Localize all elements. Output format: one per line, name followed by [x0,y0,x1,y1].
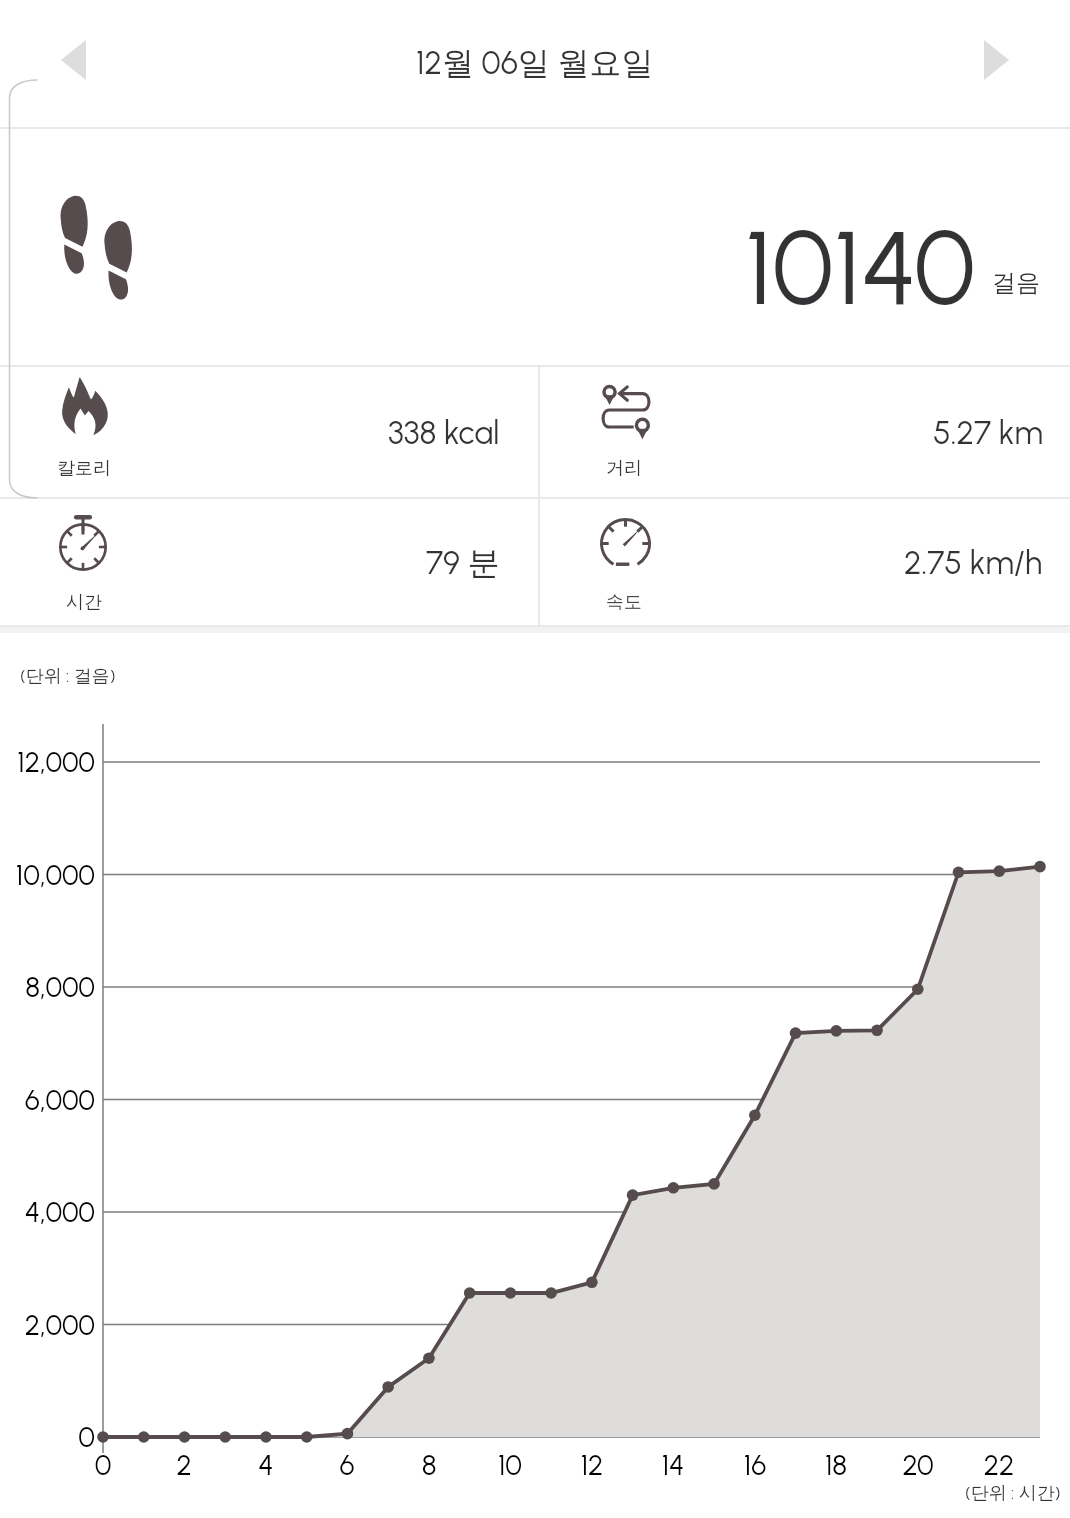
staticText: 8,000 [3,970,95,1004]
button[interactable]: 거리 [540,367,1070,497]
button[interactable]: Previous day [40,26,107,94]
button[interactable]: 속도 [540,499,1070,625]
staticText: 2.75 km/h [904,544,1043,582]
staticText: 칼로리 [24,457,144,480]
staticText: 12,000 [3,745,95,779]
button[interactable]: 시간 [0,499,538,625]
staticText: 6,000 [3,1083,95,1117]
staticText: 10 [480,1448,540,1482]
staticText: 6 [317,1448,377,1482]
staticText: 8 [399,1448,459,1482]
staticText: 0 [3,1420,95,1454]
staticText: 10,000 [3,858,95,892]
staticText: 10140 [745,206,976,330]
staticText: 2 [154,1448,214,1482]
staticText: 12 [562,1448,622,1482]
staticText: 16 [725,1448,785,1482]
staticText: 4,000 [3,1195,95,1229]
button[interactable]: 10140 [0,129,1070,365]
staticText: 5.27 km [933,414,1043,452]
staticText: 2,000 [3,1308,95,1342]
button[interactable]: 칼로리 [0,367,538,497]
button[interactable]: Next day [963,26,1030,94]
staticText: 시간 [24,591,144,614]
staticText: 걸음 [992,268,1040,298]
staticText: 4 [236,1448,296,1482]
staticText: 18 [806,1448,866,1482]
staticText: 79 분 [426,543,500,583]
staticText: (단위 : 시간) [965,1482,1061,1505]
staticText: (단위 : 걸음) [20,665,116,688]
staticText: 14 [643,1448,703,1482]
staticText: 12월 06일 월요일 [416,43,654,83]
staticText: 22 [969,1448,1029,1482]
staticText: 0 [73,1448,133,1482]
staticText: 338 kcal [388,414,500,452]
staticText: 속도 [564,591,684,614]
staticText: 거리 [564,457,684,480]
staticText: 20 [888,1448,948,1482]
